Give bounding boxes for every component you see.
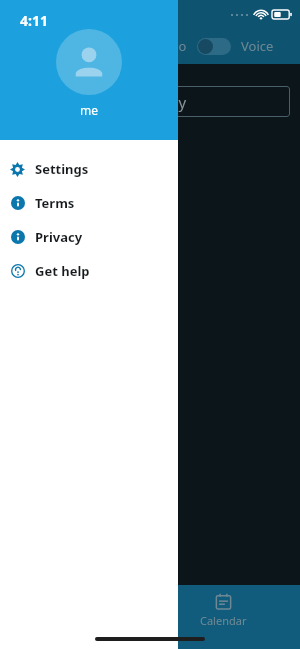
- staticText: Privacy: [35, 228, 83, 246]
- staticText: Video: [152, 37, 187, 55]
- button[interactable]: GetCleverly: [96, 86, 290, 117]
- staticText: 4:11: [20, 11, 48, 30]
- staticText: Calendar: [200, 613, 247, 628]
- staticText: me: [80, 102, 98, 118]
- button[interactable]: Calendar: [200, 593, 247, 628]
- button[interactable]: Profile photo: [56, 29, 122, 95]
- staticText: GetCleverly: [106, 92, 187, 112]
- button[interactable]: Privacy: [0, 220, 178, 254]
- button[interactable]: Toggle video or voice: [197, 38, 231, 55]
- button[interactable]: Get help: [0, 254, 178, 288]
- staticText: Voice: [241, 37, 274, 55]
- button[interactable]: Terms: [0, 186, 178, 220]
- staticText: Terms: [35, 194, 75, 212]
- staticText: Settings: [35, 160, 89, 178]
- staticText: Get help: [35, 262, 90, 280]
- button[interactable]: Settings: [0, 152, 178, 186]
